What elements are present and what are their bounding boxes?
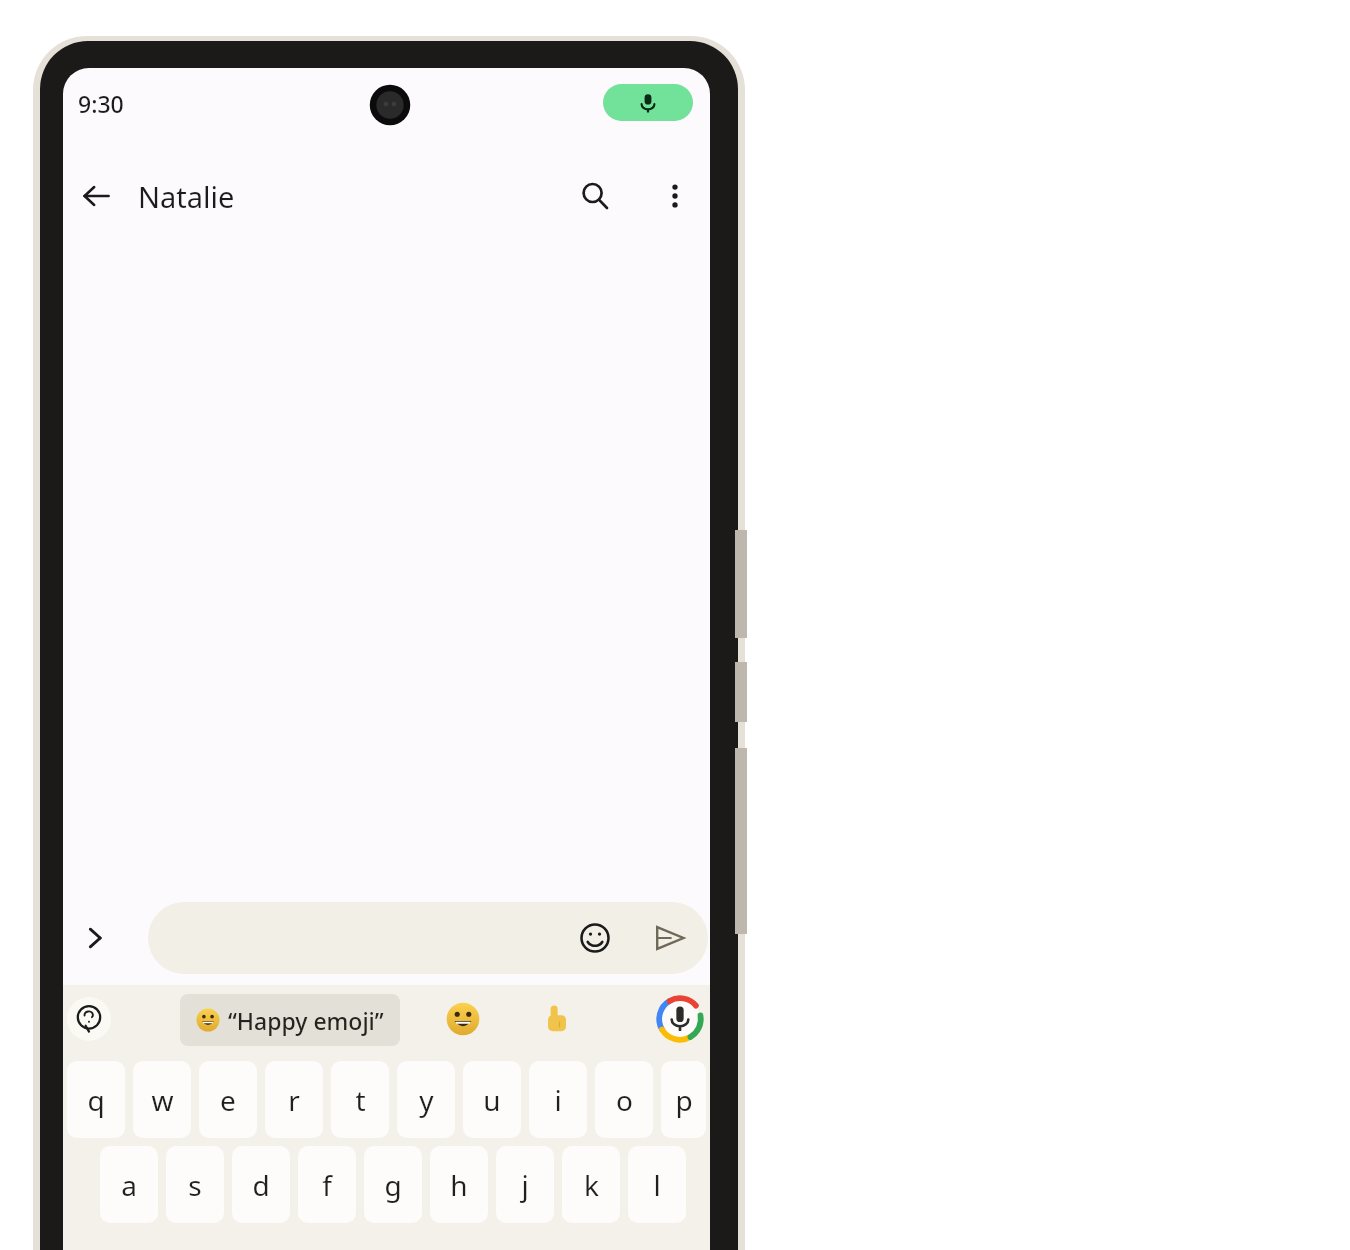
button[interactable]: e xyxy=(199,1061,257,1138)
button[interactable]: k xyxy=(562,1146,620,1223)
staticText: a xyxy=(121,1166,137,1204)
staticText: o xyxy=(616,1081,633,1119)
staticText: r xyxy=(288,1081,300,1119)
button[interactable]: Insert emoji xyxy=(148,902,708,974)
staticText: d xyxy=(252,1166,270,1204)
button[interactable]: h xyxy=(430,1146,488,1223)
button[interactable]: s xyxy=(166,1146,224,1223)
button[interactable]: y xyxy=(397,1061,455,1138)
staticText: “Happy emoji” xyxy=(228,1005,384,1036)
button[interactable]: i xyxy=(529,1061,587,1138)
button[interactable]: r xyxy=(265,1061,323,1138)
button[interactable]: Grinning emoji xyxy=(441,997,485,1041)
button[interactable]: Voice input xyxy=(652,991,708,1047)
staticText: l xyxy=(653,1166,661,1204)
button[interactable]: Back xyxy=(72,172,120,220)
staticText: k xyxy=(584,1166,599,1204)
staticText: t xyxy=(355,1081,366,1119)
button[interactable]: t xyxy=(331,1061,389,1138)
staticText: j xyxy=(521,1166,529,1204)
button[interactable]: l xyxy=(628,1146,686,1223)
button[interactable]: Help xyxy=(65,995,113,1043)
button[interactable]: f xyxy=(298,1146,356,1223)
staticText: i xyxy=(554,1081,562,1119)
button[interactable]: Send xyxy=(646,914,694,962)
button[interactable]: a xyxy=(100,1146,158,1223)
button[interactable]: Microphone active xyxy=(603,84,693,121)
button[interactable]: u xyxy=(463,1061,521,1138)
button[interactable]: j xyxy=(496,1146,554,1223)
button[interactable]: More options xyxy=(651,172,699,220)
button[interactable]: Expand actions xyxy=(71,914,119,962)
button[interactable]: Insert emoji xyxy=(571,914,619,962)
staticText: q xyxy=(87,1081,105,1119)
staticText: p xyxy=(675,1081,693,1119)
button[interactable]: d xyxy=(232,1146,290,1223)
staticText: u xyxy=(483,1081,501,1119)
staticText: e xyxy=(220,1081,236,1119)
button[interactable]: g xyxy=(364,1146,422,1223)
staticText: h xyxy=(450,1166,468,1204)
staticText: y xyxy=(419,1081,434,1119)
staticText: g xyxy=(384,1166,402,1204)
staticText: 9:30 xyxy=(78,88,124,119)
button[interactable]: Search xyxy=(571,172,619,220)
button[interactable]: p xyxy=(661,1061,706,1138)
button[interactable]: o xyxy=(595,1061,653,1138)
button[interactable]: “Happy emoji” xyxy=(196,994,384,1046)
staticText: f xyxy=(322,1166,332,1204)
staticText: Natalie xyxy=(138,177,235,216)
button[interactable]: q xyxy=(67,1061,125,1138)
staticText: s xyxy=(188,1166,202,1204)
button[interactable]: w xyxy=(133,1061,191,1138)
staticText: w xyxy=(151,1081,174,1119)
button[interactable]: Thumbs up emoji xyxy=(535,997,579,1041)
